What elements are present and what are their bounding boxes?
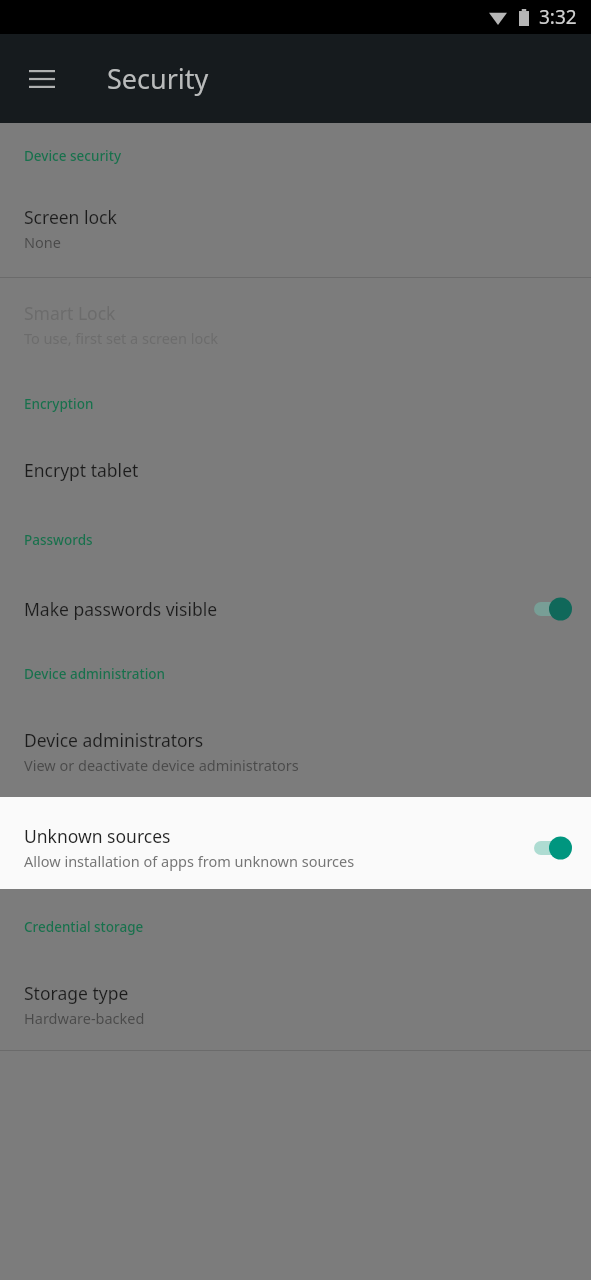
staticText: View or deactivate device administrators [24, 755, 299, 775]
staticText: 3:32 [539, 4, 577, 30]
staticText: Make passwords visible [24, 597, 218, 621]
button[interactable]: Screen lock [0, 205, 591, 252]
staticText: Allow installation of apps from unknown … [24, 851, 355, 871]
button[interactable]: Toggle [519, 828, 583, 868]
staticText: Security [107, 60, 209, 97]
staticText: Encryption [24, 395, 94, 413]
staticText: Device administrators [24, 728, 204, 752]
button[interactable]: Open navigation menu [14, 51, 70, 107]
button[interactable]: Unknown sources [0, 824, 591, 871]
button[interactable]: Device administrators [0, 728, 591, 775]
staticText: Screen lock [24, 205, 117, 229]
button[interactable]: Encrypt tablet [0, 458, 591, 482]
staticText: Passwords [24, 531, 93, 549]
staticText: None [24, 232, 61, 252]
button[interactable]: Make passwords visible [0, 589, 591, 629]
staticText: Encrypt tablet [24, 458, 139, 482]
staticText: Unknown sources [24, 824, 171, 848]
button[interactable]: Toggle [519, 589, 583, 629]
staticText: Credential storage [24, 918, 144, 936]
staticText: Device administration [24, 665, 166, 683]
staticText: Hardware-backed [24, 1008, 145, 1028]
staticText: To use, first set a screen lock [24, 328, 218, 348]
button[interactable]: Storage type [0, 981, 591, 1028]
staticText: Smart Lock [24, 301, 116, 325]
staticText: Device security [24, 147, 122, 165]
staticText: Storage type [24, 981, 129, 1005]
